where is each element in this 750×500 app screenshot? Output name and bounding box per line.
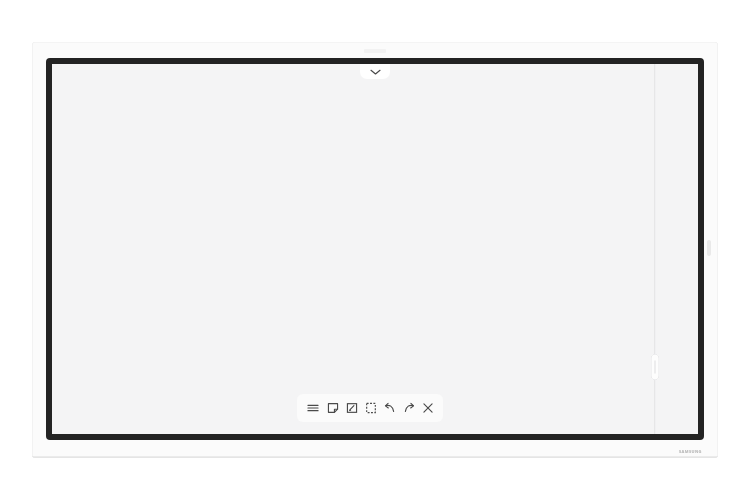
button[interactable]: Page scroll handle [651,354,659,380]
button[interactable]: Undo [380,394,399,422]
button[interactable]: Select [361,394,380,422]
button[interactable]: Redo [399,394,418,422]
button[interactable]: Close [418,394,437,422]
button[interactable]: Power button [707,240,711,256]
button[interactable]: Edit page [342,394,361,422]
button[interactable]: New note [323,394,342,422]
button[interactable]: Expand menu [360,64,390,79]
staticText: SAMSUNG [679,449,702,454]
button[interactable]: Menu [303,394,323,422]
